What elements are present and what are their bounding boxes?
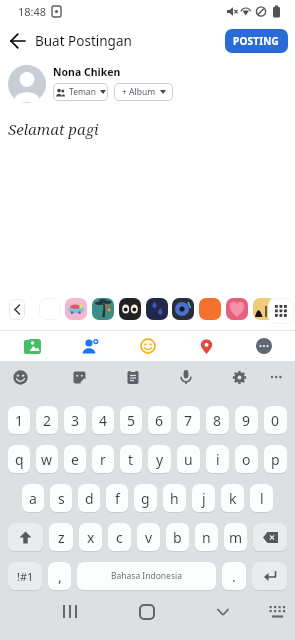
staticText: 2 <box>43 411 52 430</box>
staticText: v <box>145 528 153 547</box>
button[interactable] <box>39 298 61 320</box>
button[interactable]: k <box>221 484 244 513</box>
staticText: 4 <box>99 411 108 430</box>
button[interactable]: 6 <box>148 406 171 435</box>
button[interactable] <box>270 370 283 383</box>
staticText: Teman <box>69 86 96 98</box>
button[interactable]: v <box>137 523 160 552</box>
button[interactable]: j <box>192 484 215 513</box>
staticText: 1 <box>15 411 24 430</box>
button[interactable] <box>232 370 247 385</box>
staticText: 7 <box>184 411 193 430</box>
button[interactable]: Bahasa Indonesia <box>77 562 216 591</box>
button[interactable]: , <box>48 562 71 591</box>
button[interactable] <box>72 370 87 385</box>
button[interactable]: h <box>163 484 186 513</box>
staticText: t <box>128 450 134 469</box>
button[interactable]: f <box>106 484 128 513</box>
button[interactable]: e <box>64 445 86 474</box>
staticText: !#1 <box>17 569 34 584</box>
staticText: a <box>29 489 37 508</box>
button[interactable]: q <box>8 445 30 474</box>
button[interactable]: 1 <box>8 406 30 435</box>
button[interactable]: u <box>177 445 200 474</box>
button[interactable] <box>126 370 140 384</box>
button[interactable] <box>268 298 294 324</box>
button[interactable] <box>139 604 155 620</box>
button[interactable]: 3 <box>64 406 86 435</box>
button[interactable] <box>65 298 87 320</box>
button[interactable] <box>177 331 235 361</box>
button[interactable] <box>9 299 25 320</box>
button[interactable] <box>92 298 114 320</box>
button[interactable] <box>253 523 287 552</box>
button[interactable] <box>119 331 177 361</box>
button[interactable]: m <box>224 523 247 552</box>
button[interactable] <box>252 562 287 591</box>
staticText: w <box>41 450 53 469</box>
button[interactable]: + Album <box>114 83 173 101</box>
button[interactable] <box>253 298 275 320</box>
button[interactable]: n <box>195 523 218 552</box>
button[interactable] <box>146 298 168 320</box>
button[interactable] <box>268 604 287 619</box>
button[interactable]: 2 <box>36 406 58 435</box>
button[interactable] <box>62 604 78 619</box>
button[interactable]: 9 <box>235 406 258 435</box>
staticText: b <box>173 528 182 547</box>
button[interactable]: z <box>49 523 73 552</box>
button[interactable]: 4 <box>92 406 114 435</box>
button[interactable] <box>199 298 221 320</box>
staticText: x <box>87 528 95 547</box>
button[interactable]: w <box>36 445 58 474</box>
button[interactable] <box>13 370 28 385</box>
button[interactable]: d <box>78 484 100 513</box>
button[interactable] <box>8 523 43 552</box>
staticText: 0 <box>271 411 280 430</box>
button[interactable]: p <box>264 445 287 474</box>
button[interactable]: i <box>206 445 229 474</box>
button[interactable] <box>179 370 193 384</box>
button[interactable] <box>10 33 26 49</box>
button[interactable] <box>4 331 61 361</box>
staticText: e <box>71 450 79 469</box>
staticText: g <box>141 489 150 508</box>
staticText: 3 <box>71 411 80 430</box>
button[interactable]: 8 <box>206 406 229 435</box>
button[interactable]: POSTING <box>225 29 288 53</box>
button[interactable] <box>172 298 194 320</box>
button[interactable]: . <box>222 562 246 591</box>
button[interactable]: o <box>235 445 258 474</box>
button[interactable]: r <box>92 445 114 474</box>
button[interactable]: x <box>79 523 102 552</box>
staticText: p <box>271 450 280 469</box>
button[interactable]: 7 <box>177 406 200 435</box>
button[interactable] <box>217 608 229 616</box>
button[interactable]: 0 <box>264 406 287 435</box>
button[interactable]: l <box>250 484 273 513</box>
button[interactable]: !#1 <box>8 562 42 591</box>
staticText: o <box>242 450 251 469</box>
staticText: 9 <box>242 411 251 430</box>
button[interactable] <box>61 331 119 361</box>
button[interactable]: s <box>50 484 72 513</box>
staticText: n <box>202 528 211 547</box>
staticText: q <box>15 450 24 469</box>
button[interactable]: c <box>108 523 131 552</box>
staticText: . <box>232 567 236 586</box>
staticText: Bahasa Indonesia <box>111 570 182 582</box>
button[interactable]: g <box>134 484 157 513</box>
button[interactable] <box>235 331 293 361</box>
button[interactable]: Teman <box>53 83 108 101</box>
button[interactable]: b <box>166 523 189 552</box>
staticText: POSTING <box>233 34 280 48</box>
staticText: Selamat pagi <box>8 119 99 139</box>
button[interactable]: a <box>22 484 44 513</box>
button[interactable] <box>119 298 141 320</box>
button[interactable]: t <box>120 445 142 474</box>
staticText: f <box>115 489 120 508</box>
button[interactable]: 5 <box>120 406 142 435</box>
staticText: Buat Postingan <box>35 32 132 50</box>
button[interactable] <box>226 298 248 320</box>
button[interactable]: y <box>148 445 171 474</box>
